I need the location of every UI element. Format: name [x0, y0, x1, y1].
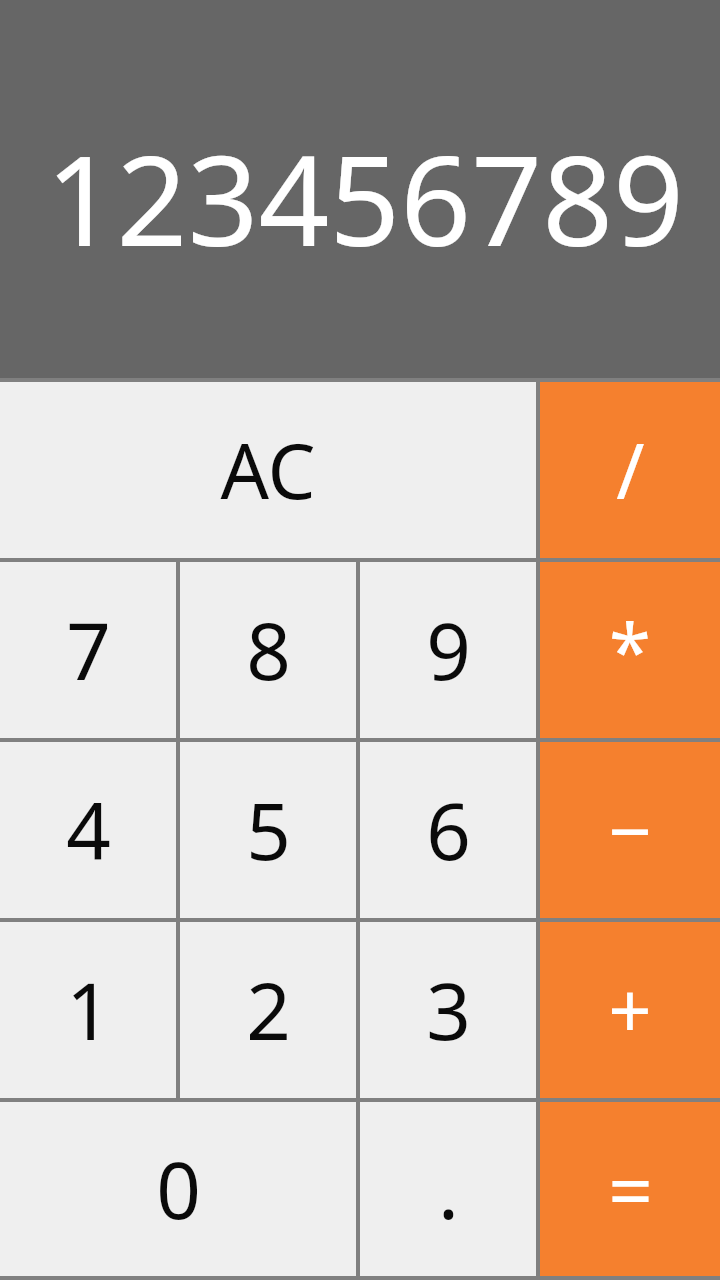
button[interactable]: 2 [180, 922, 356, 1098]
staticText: 9 [426, 597, 471, 703]
button[interactable]: 5 [180, 742, 356, 918]
button[interactable]: AC [0, 382, 536, 558]
staticText: 123456789 [45, 113, 684, 282]
button[interactable]: Multiply [540, 562, 720, 738]
staticText: 3 [426, 957, 471, 1063]
button[interactable]: 1 [0, 922, 176, 1098]
staticText: 1 [66, 957, 111, 1063]
button[interactable]: 8 [180, 562, 356, 738]
button[interactable]: 3 [360, 922, 536, 1098]
staticText: / [616, 418, 645, 522]
staticText: 2 [246, 957, 291, 1063]
staticText: 4 [66, 777, 111, 883]
button[interactable]: Decimal point [360, 1102, 536, 1276]
staticText: 5 [246, 777, 291, 883]
button[interactable]: 0 [0, 1102, 356, 1276]
staticText: 7 [66, 597, 111, 703]
button[interactable]: 6 [360, 742, 536, 918]
button[interactable]: 7 [0, 562, 176, 738]
staticText: . [438, 1136, 459, 1242]
staticText: AC [220, 418, 316, 522]
staticText: 6 [426, 777, 471, 883]
button[interactable]: Divide [540, 382, 720, 558]
button[interactable]: Add [540, 922, 720, 1098]
button[interactable]: 4 [0, 742, 176, 918]
button[interactable]: Equals [540, 1102, 720, 1276]
button[interactable]: 9 [360, 562, 536, 738]
staticText: 0 [156, 1136, 201, 1242]
staticText: − [608, 778, 652, 882]
staticText: * [609, 598, 651, 702]
staticText: 8 [246, 597, 291, 703]
button[interactable]: Subtract [540, 742, 720, 918]
staticText: = [608, 1136, 653, 1242]
staticText: + [608, 958, 652, 1062]
